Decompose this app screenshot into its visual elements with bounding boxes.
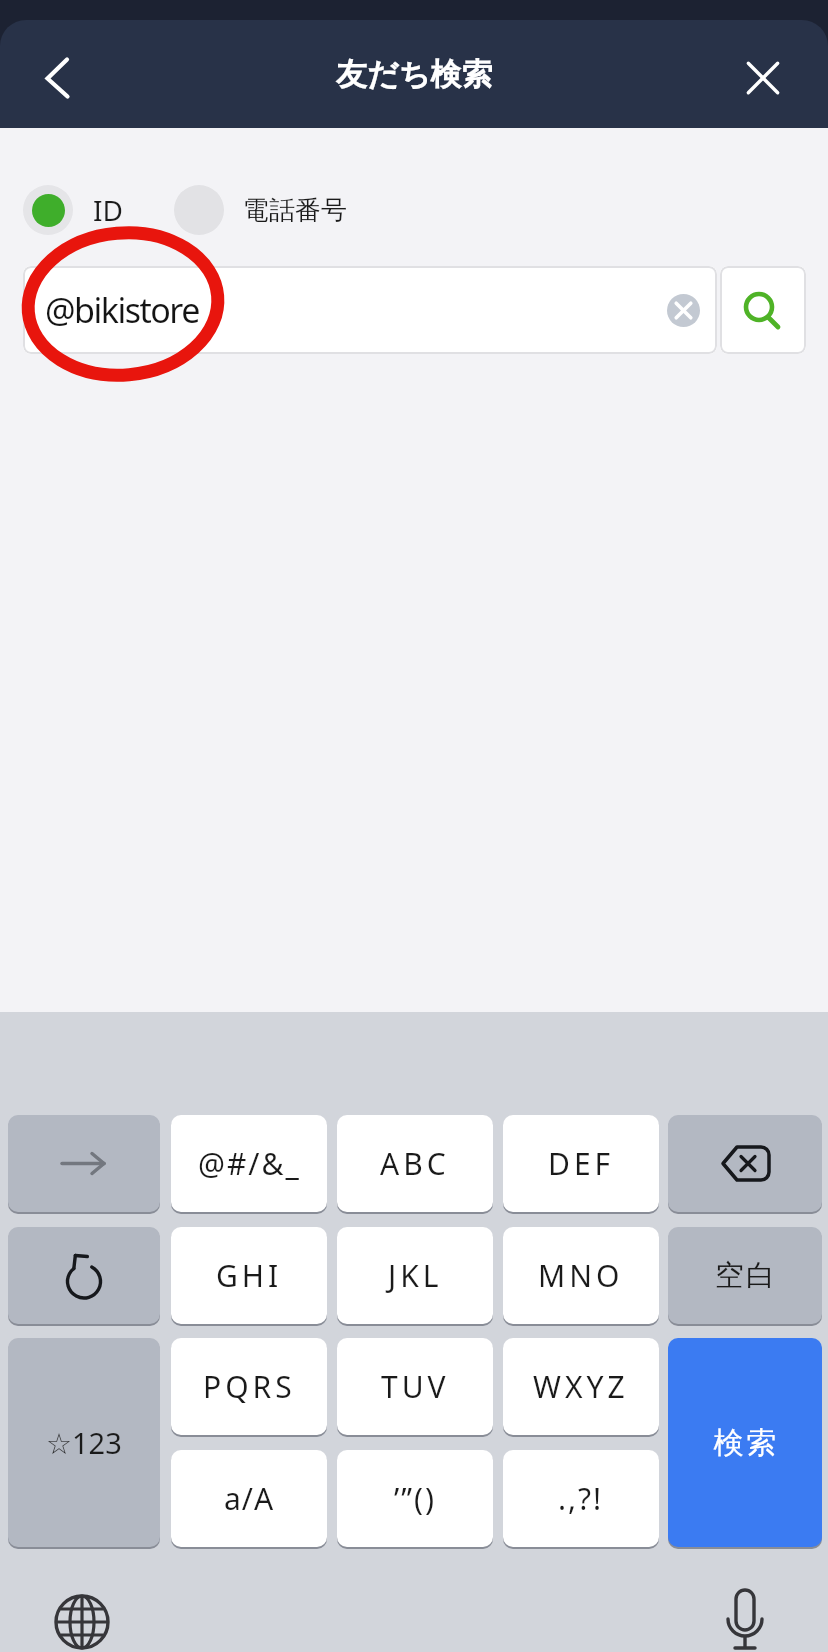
staticText: @#/&_ <box>198 1143 301 1184</box>
button[interactable] <box>8 1115 160 1212</box>
staticText: JKL <box>388 1255 443 1296</box>
button[interactable] <box>720 266 806 354</box>
button[interactable]: DEF <box>503 1115 659 1212</box>
staticText: 検索 <box>712 1424 778 1462</box>
staticText: DEF <box>548 1143 615 1184</box>
button[interactable]: ’”() <box>337 1450 493 1547</box>
staticText: MNO <box>538 1255 624 1296</box>
button[interactable] <box>40 1580 126 1652</box>
staticText: ABC <box>380 1143 450 1184</box>
staticText: @bikistore <box>45 287 199 333</box>
staticText: PQRS <box>203 1366 296 1407</box>
button[interactable] <box>728 20 828 128</box>
button[interactable]: JKL <box>337 1227 493 1324</box>
button[interactable]: MNO <box>503 1227 659 1324</box>
staticText: GHI <box>216 1255 283 1296</box>
staticText: ’”() <box>394 1478 437 1519</box>
button[interactable] <box>174 185 224 235</box>
button[interactable]: ABC <box>337 1115 493 1212</box>
staticText: WXYZ <box>533 1366 629 1407</box>
staticText: ☆123 <box>46 1423 122 1462</box>
button[interactable]: PQRS <box>171 1338 327 1435</box>
staticText: 電話番号 <box>243 194 347 227</box>
button[interactable]: 空白 <box>668 1227 822 1324</box>
button[interactable] <box>667 294 700 327</box>
staticText: 友だち検索 <box>336 55 493 94</box>
button[interactable]: a/A <box>171 1450 327 1547</box>
button[interactable] <box>23 185 73 235</box>
button[interactable] <box>8 1227 160 1324</box>
button[interactable]: ☆123 <box>8 1338 160 1547</box>
staticText: .,?! <box>558 1478 604 1519</box>
staticText: a/A <box>224 1478 275 1519</box>
button[interactable]: WXYZ <box>503 1338 659 1435</box>
staticText: 空白 <box>714 1257 776 1294</box>
button[interactable] <box>0 20 100 128</box>
button[interactable] <box>702 1580 788 1652</box>
button[interactable]: .,?! <box>503 1450 659 1547</box>
staticText: ID <box>93 191 123 229</box>
staticText: TUV <box>381 1366 450 1407</box>
button[interactable]: @bikistore <box>23 266 717 354</box>
button[interactable] <box>668 1115 822 1212</box>
button[interactable]: 検索 <box>668 1338 822 1547</box>
button[interactable]: TUV <box>337 1338 493 1435</box>
button[interactable]: GHI <box>171 1227 327 1324</box>
button[interactable]: @#/&_ <box>171 1115 327 1212</box>
